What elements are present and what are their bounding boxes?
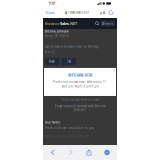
button[interactable]: Call bbox=[62, 58, 76, 65]
button[interactable]: Open in Safari bbox=[98, 145, 116, 160]
staticText: Your Notes bbox=[45, 121, 60, 124]
button[interactable]: Close bbox=[112, 68, 116, 72]
staticText: Brenna Johnson bbox=[45, 30, 69, 33]
staticText: menu bbox=[105, 22, 113, 25]
button[interactable]: Reload bbox=[107, 7, 115, 18]
staticText: Call bbox=[66, 60, 71, 63]
button[interactable]: Text size bbox=[99, 7, 107, 18]
staticText: Email bbox=[49, 60, 55, 63]
staticText: × bbox=[113, 67, 115, 72]
staticText: Prefer not contact time: Afternoon 11 bbox=[53, 80, 107, 84]
staticText: A bbox=[100, 12, 102, 15]
button[interactable]: Done bbox=[45, 7, 55, 18]
staticText: .NET bbox=[69, 21, 77, 26]
staticText: These notes are only visible to you. bbox=[45, 126, 95, 130]
button[interactable]: Search bbox=[94, 18, 101, 29]
staticText: Done bbox=[45, 10, 54, 15]
staticText: Feb 12 bbox=[45, 50, 55, 54]
button[interactable]: Forward bbox=[62, 145, 80, 160]
staticText: Prefer contact method: Email bbox=[60, 98, 99, 101]
button[interactable]: Share bbox=[80, 145, 98, 160]
staticText: A bbox=[103, 10, 106, 15]
staticText: Estator bbox=[45, 21, 60, 26]
button[interactable]: Email bbox=[45, 58, 59, 65]
staticText: Sales bbox=[60, 21, 69, 26]
button[interactable]: menu bbox=[101, 21, 115, 26]
button[interactable]: Back bbox=[44, 145, 62, 160]
staticText: (817) 608-1678 bbox=[68, 72, 92, 78]
staticText: Johnson bbox=[74, 108, 86, 111]
staticText: estatorsales.net bbox=[68, 11, 89, 14]
staticText: Bend, TX 76010 bbox=[45, 34, 69, 38]
staticText: Add a note about this customer… bbox=[45, 135, 91, 138]
staticText: Last contacted by Aaron Hall on Monday, bbox=[45, 45, 99, 48]
staticText: am-4 pm, Night 4 pm-9 pm bbox=[61, 85, 98, 88]
staticText: 9:41 bbox=[49, 2, 56, 5]
staticText: I have a signed contract with Brenna bbox=[55, 104, 105, 108]
